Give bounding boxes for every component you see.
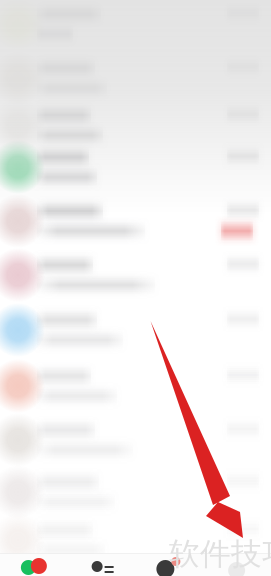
button[interactable] xyxy=(0,0,271,576)
button[interactable] xyxy=(0,0,271,576)
button[interactable] xyxy=(0,0,271,576)
staticText: 软件技巧 xyxy=(169,535,271,573)
button[interactable]: Contacts xyxy=(68,554,136,576)
button[interactable]: Me xyxy=(203,554,271,576)
button[interactable] xyxy=(0,0,271,576)
button[interactable] xyxy=(0,0,271,576)
button[interactable] xyxy=(0,0,271,576)
button[interactable] xyxy=(0,0,271,576)
button[interactable]: Discover xyxy=(135,554,203,576)
button[interactable] xyxy=(0,0,271,576)
button[interactable]: Chats xyxy=(0,554,68,576)
button[interactable] xyxy=(0,0,271,576)
button[interactable] xyxy=(0,0,271,576)
button[interactable] xyxy=(0,0,271,576)
